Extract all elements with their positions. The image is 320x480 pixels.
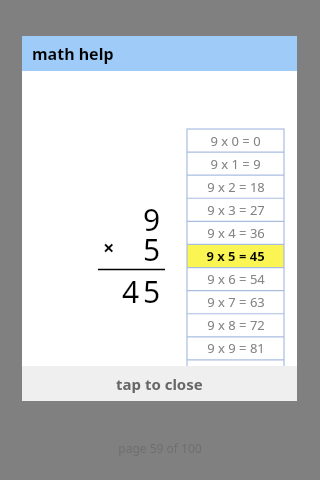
button[interactable]: 9 x 10 = 90: [187, 359, 284, 382]
staticText: 5: [143, 271, 161, 312]
button[interactable]: 9 x 1 = 9: [187, 152, 284, 175]
staticText: 9 x 0 = 0: [210, 132, 261, 150]
staticText: 9 x 3 = 27: [207, 201, 265, 219]
staticText: 9 x 1 = 9: [210, 155, 261, 173]
staticText: 9 x 6 = 54: [207, 270, 265, 288]
button[interactable]: 9 x 4 = 36: [187, 221, 284, 244]
button[interactable]: 9 x 9 = 81: [187, 336, 284, 359]
staticText: 9 x 10 = 90: [203, 362, 269, 380]
staticText: 9 x 8 = 72: [207, 316, 265, 334]
staticText: math help: [32, 43, 114, 65]
button[interactable]: 9 x 5 = 45: [187, 244, 284, 267]
button[interactable]: 9 x 6 = 54: [187, 267, 284, 290]
staticText: ×: [103, 234, 115, 261]
staticText: 9 x 2 = 18: [207, 178, 265, 196]
staticText: 5: [143, 229, 161, 270]
staticText: 9 x 9 = 81: [207, 339, 265, 357]
staticText: 9: [143, 199, 161, 240]
staticText: tap to close: [116, 374, 203, 394]
button[interactable]: 9 x 7 = 63: [187, 290, 284, 313]
staticText: 9 x 7 = 63: [207, 293, 265, 311]
staticText: 9 x 5 = 45: [206, 247, 265, 265]
button[interactable]: 9 x 2 = 18: [187, 175, 284, 198]
button[interactable]: 9 x 0 = 0: [187, 129, 284, 152]
staticText: 9 x 4 = 36: [207, 224, 265, 242]
staticText: page 59 of 100: [118, 440, 202, 456]
button[interactable]: 9 x 3 = 27: [187, 198, 284, 221]
button[interactable]: tap to close: [22, 366, 297, 401]
staticText: 4: [122, 271, 140, 312]
button[interactable]: 9 x 8 = 72: [187, 313, 284, 336]
